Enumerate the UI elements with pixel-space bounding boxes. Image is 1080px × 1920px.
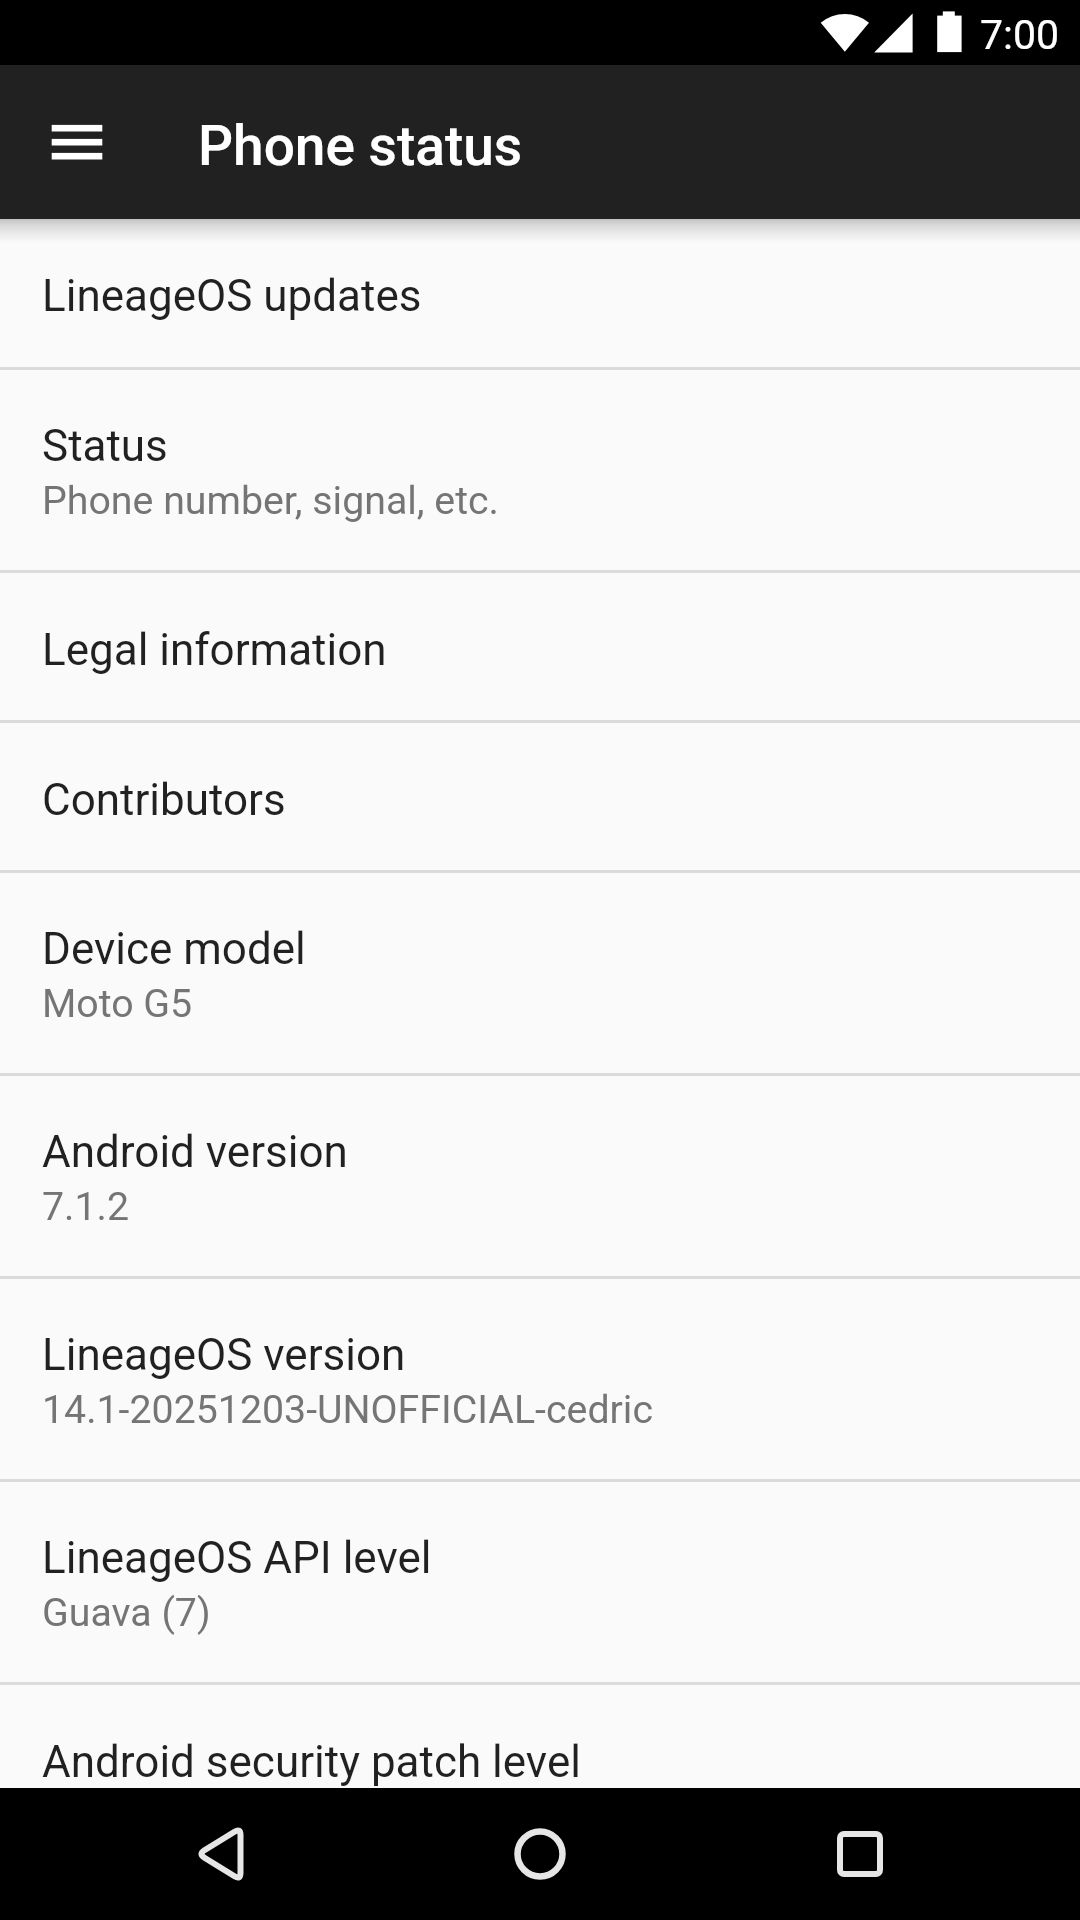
button[interactable]: Android version bbox=[0, 1076, 1080, 1276]
staticText: Android version bbox=[42, 1126, 348, 1178]
staticText: Phone number, signal, etc. bbox=[42, 478, 499, 524]
staticText: LineageOS API level bbox=[42, 1532, 432, 1584]
staticText: Status bbox=[42, 420, 168, 472]
button[interactable]: LineageOS API level bbox=[0, 1482, 1080, 1682]
staticText: 7.1.2 bbox=[42, 1184, 129, 1230]
staticText: Device model bbox=[42, 923, 306, 975]
button[interactable]: Back bbox=[160, 1794, 280, 1914]
button[interactable]: Device model bbox=[0, 873, 1080, 1073]
staticText: LineageOS updates bbox=[42, 270, 422, 322]
staticText: Contributors bbox=[42, 774, 286, 826]
button[interactable]: LineageOS version bbox=[0, 1279, 1080, 1479]
staticText: 7:00 bbox=[980, 11, 1060, 59]
button[interactable]: Android security patch level bbox=[0, 1685, 1080, 1788]
button[interactable]: Recent apps bbox=[800, 1794, 920, 1914]
staticText: Android security patch level bbox=[42, 1736, 581, 1788]
staticText: Phone status bbox=[198, 114, 523, 178]
staticText: 14.1-20251203-UNOFFICIAL-cedric bbox=[42, 1387, 653, 1433]
staticText: Legal information bbox=[42, 624, 387, 676]
staticText: Moto G5 bbox=[42, 981, 193, 1027]
button[interactable]: Open navigation menu bbox=[29, 94, 125, 190]
button[interactable]: Home bbox=[480, 1794, 600, 1914]
button[interactable]: Legal information bbox=[0, 573, 1080, 720]
button[interactable]: Contributors bbox=[0, 723, 1080, 870]
staticText: Guava (7) bbox=[42, 1590, 211, 1636]
button[interactable]: Status bbox=[0, 370, 1080, 570]
button[interactable]: LineageOS updates bbox=[0, 219, 1080, 367]
staticText: LineageOS version bbox=[42, 1329, 406, 1381]
